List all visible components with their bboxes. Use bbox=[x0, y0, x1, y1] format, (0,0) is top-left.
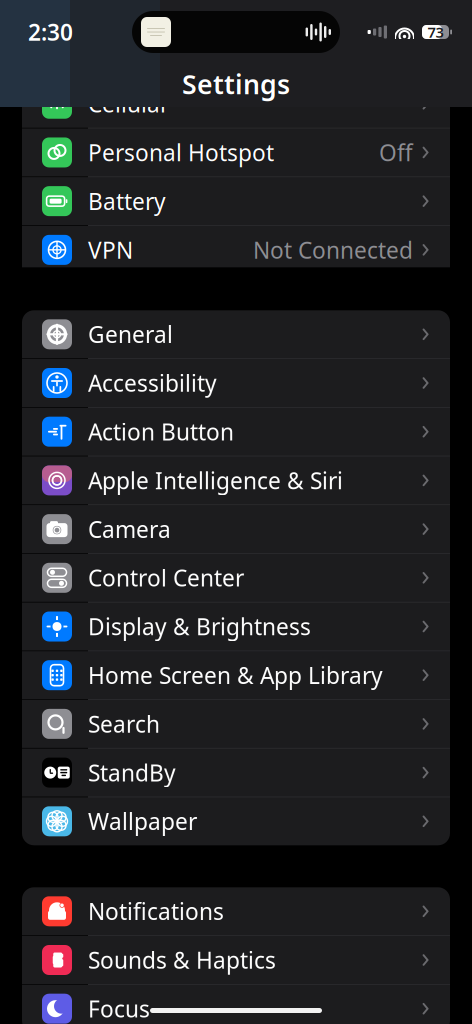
button[interactable]: StandBy bbox=[22, 749, 450, 797]
button[interactable]: Control Center bbox=[22, 554, 450, 602]
staticText: Home Screen & App Library bbox=[88, 660, 383, 690]
staticText: Focus bbox=[88, 994, 150, 1024]
staticText: Off bbox=[379, 137, 413, 167]
staticText: Display & Brightness bbox=[88, 611, 311, 641]
staticText: Settings bbox=[182, 66, 290, 102]
button[interactable]: Sounds & Haptics bbox=[22, 936, 450, 985]
staticText: Notifications bbox=[88, 896, 224, 926]
button[interactable]: Home Screen & App Library bbox=[22, 651, 450, 700]
button[interactable]: Camera bbox=[22, 505, 450, 554]
staticText: Search bbox=[88, 709, 160, 739]
staticText: VPN bbox=[88, 235, 133, 265]
staticText: Wallpaper bbox=[88, 806, 197, 836]
staticText: Not Connected bbox=[253, 235, 413, 265]
staticText: Action Button bbox=[88, 417, 234, 447]
staticText: Apple Intelligence & Siri bbox=[88, 465, 343, 495]
staticText: Accessibility bbox=[88, 368, 217, 398]
button[interactable]: Apple Intelligence & Siri bbox=[22, 456, 450, 505]
button[interactable]: Cellular bbox=[22, 80, 450, 128]
staticText: Control Center bbox=[88, 563, 244, 593]
staticText: Cellular bbox=[88, 89, 169, 119]
button[interactable]: General bbox=[22, 310, 450, 359]
button[interactable]: Accessibility bbox=[22, 359, 450, 408]
staticText: General bbox=[88, 319, 173, 349]
staticText: 73 bbox=[427, 22, 443, 42]
button[interactable]: Focus bbox=[22, 985, 450, 1024]
button[interactable]: Action Button bbox=[22, 408, 450, 456]
button[interactable]: Personal Hotspot bbox=[22, 128, 450, 177]
staticText: Battery bbox=[88, 186, 166, 216]
staticText: 2:30 bbox=[28, 17, 73, 47]
staticText: Camera bbox=[88, 514, 171, 544]
button[interactable]: Wallpaper bbox=[22, 797, 450, 845]
staticText: StandBy bbox=[88, 757, 176, 788]
button[interactable]: VPN bbox=[22, 226, 450, 274]
staticText: Sounds & Haptics bbox=[88, 945, 276, 975]
button[interactable]: Display & Brightness bbox=[22, 602, 450, 651]
staticText: Personal Hotspot bbox=[88, 137, 274, 167]
button[interactable]: Search bbox=[22, 700, 450, 749]
button[interactable]: Notifications bbox=[22, 887, 450, 936]
button[interactable]: Battery bbox=[22, 177, 450, 226]
